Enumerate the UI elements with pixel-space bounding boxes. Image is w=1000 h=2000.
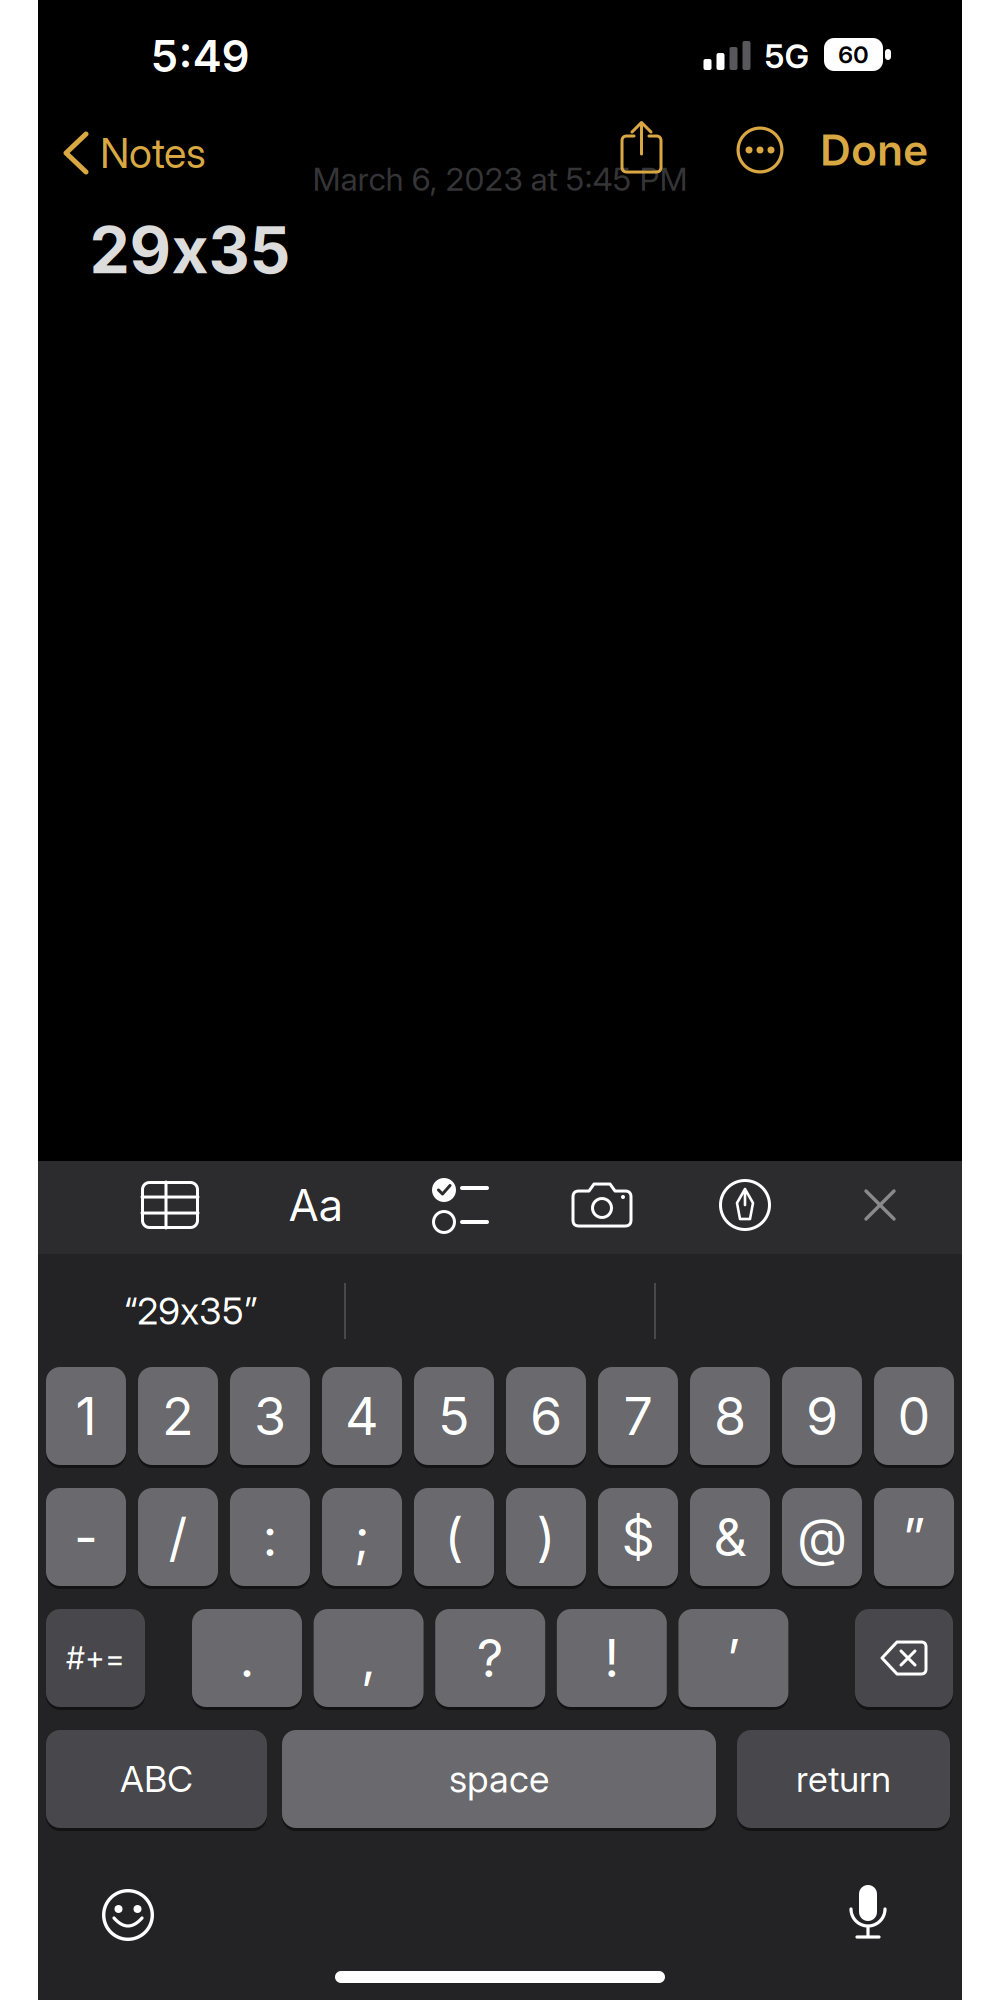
- button[interactable]: @: [782, 1486, 862, 1587]
- button[interactable]: $: [598, 1486, 678, 1587]
- staticText: ’: [726, 1627, 740, 1689]
- button[interactable]: 3: [230, 1365, 310, 1466]
- button[interactable]: 8: [690, 1365, 770, 1466]
- staticText: /: [168, 1506, 187, 1568]
- staticText: #+=: [66, 1640, 125, 1676]
- button[interactable]: ;: [322, 1486, 402, 1587]
- staticText: ABC: [120, 1758, 193, 1800]
- button[interactable]: 5: [414, 1365, 494, 1466]
- button[interactable]: /: [138, 1486, 218, 1587]
- staticText: 1: [75, 1385, 96, 1447]
- button[interactable]: 0: [874, 1365, 954, 1466]
- button[interactable]: #+=: [46, 1607, 145, 1708]
- button[interactable]: Insert table: [141, 1181, 199, 1229]
- staticText: ): [536, 1506, 555, 1568]
- staticText: 5:49: [150, 30, 249, 82]
- button[interactable]: ”: [874, 1486, 954, 1587]
- staticText: 35: [208, 212, 290, 288]
- button[interactable]: (: [414, 1486, 494, 1587]
- staticText: Done: [820, 125, 928, 175]
- staticText: 3: [254, 1385, 286, 1447]
- staticText: 4: [345, 1385, 379, 1447]
- button[interactable]: 9: [782, 1365, 862, 1466]
- button[interactable]: Insert photo: [573, 1181, 631, 1229]
- button[interactable]: “29: [51, 1266, 331, 1356]
- button[interactable]: space: [282, 1728, 716, 1829]
- button[interactable]: More: [736, 126, 783, 173]
- staticText: 8: [714, 1385, 746, 1447]
- button[interactable]: 2: [138, 1365, 218, 1466]
- button[interactable]: .: [192, 1607, 302, 1708]
- staticText: ;: [354, 1506, 370, 1568]
- button[interactable]: Format: [281, 1175, 351, 1235]
- staticText: 5: [438, 1385, 470, 1447]
- button[interactable]: ?: [435, 1607, 545, 1708]
- button[interactable]: 1: [46, 1365, 126, 1466]
- button[interactable]: -: [46, 1486, 126, 1587]
- staticText: 35”: [199, 1289, 258, 1333]
- staticText: ?: [477, 1627, 504, 1689]
- staticText: Notes: [100, 129, 206, 177]
- button[interactable]: return: [737, 1728, 950, 1829]
- button[interactable]: Dismiss keyboard: [856, 1181, 904, 1229]
- button[interactable]: Emoji: [102, 1889, 154, 1941]
- button[interactable]: 7: [598, 1365, 678, 1466]
- staticText: 2: [162, 1385, 194, 1447]
- staticText: $: [621, 1506, 654, 1568]
- staticText: return: [796, 1758, 891, 1800]
- staticText: -: [74, 1506, 98, 1568]
- staticText: @: [797, 1506, 847, 1568]
- staticText: space: [449, 1757, 549, 1801]
- button[interactable]: 6: [506, 1365, 586, 1466]
- button[interactable]: Back to Notes: [64, 125, 284, 181]
- staticText: ”: [902, 1506, 925, 1568]
- staticText: .: [239, 1627, 254, 1689]
- staticText: !: [604, 1627, 619, 1689]
- staticText: 7: [623, 1385, 652, 1447]
- staticText: x: [180, 1289, 199, 1333]
- staticText: (: [444, 1506, 463, 1568]
- button[interactable]: Markup: [719, 1179, 771, 1231]
- staticText: &: [713, 1506, 746, 1568]
- staticText: Aa: [288, 1179, 343, 1231]
- button[interactable]: 4: [322, 1365, 402, 1466]
- button[interactable]: ,: [314, 1607, 424, 1708]
- button[interactable]: Checklist: [430, 1180, 488, 1232]
- staticText: “29: [124, 1289, 180, 1333]
- button[interactable]: Share: [621, 120, 662, 174]
- staticText: 9: [806, 1385, 838, 1447]
- button[interactable]: &: [690, 1486, 770, 1587]
- button[interactable]: Done: [799, 122, 949, 178]
- button[interactable]: ABC: [46, 1728, 267, 1829]
- staticText: 6: [530, 1385, 562, 1447]
- button[interactable]: Dictate: [843, 1884, 893, 1942]
- button[interactable]: ’: [678, 1607, 788, 1708]
- button[interactable]: :: [230, 1486, 310, 1587]
- staticText: 5G: [764, 36, 809, 76]
- staticText: 0: [897, 1385, 930, 1447]
- button[interactable]: Delete: [855, 1607, 953, 1708]
- button[interactable]: ): [506, 1486, 586, 1587]
- button[interactable]: !: [557, 1607, 667, 1708]
- staticText: 29: [89, 212, 171, 288]
- staticText: 60: [838, 40, 869, 69]
- staticText: ,: [361, 1627, 376, 1689]
- staticText: x: [171, 212, 208, 288]
- staticText: :: [262, 1506, 277, 1568]
- staticText: March 6, 2023 at 5:45 PM: [312, 160, 687, 198]
